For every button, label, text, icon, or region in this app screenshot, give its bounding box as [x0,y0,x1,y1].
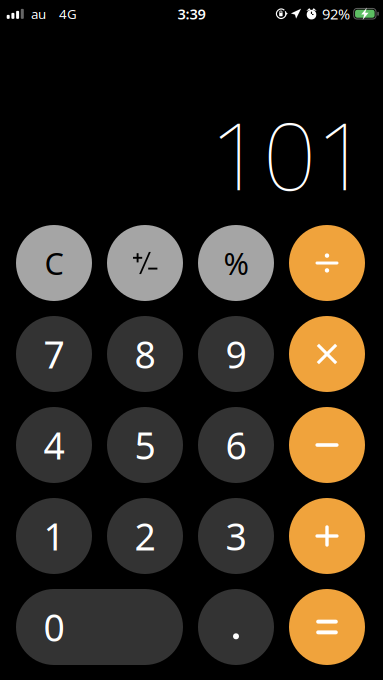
button[interactable]: % [198,225,274,301]
button[interactable]: equals [289,589,365,665]
button[interactable]: 3 [198,498,274,574]
button[interactable]: plus minus [107,225,183,301]
button[interactable]: 2 [107,498,183,574]
button[interactable]: 7 [16,316,92,392]
staticText: 3 [225,511,246,561]
staticText: 101 [210,92,369,216]
staticText: 0 [43,602,64,652]
button[interactable]: 6 [198,407,274,483]
staticText: 7 [43,329,64,379]
staticText: 2 [134,511,155,561]
button[interactable]: 5 [107,407,183,483]
button[interactable]: multiply [289,316,365,392]
staticText: 9 [225,329,246,379]
staticText: 3:39 [177,4,205,23]
button[interactable]: 4 [16,407,92,483]
staticText: % [223,243,248,283]
staticText: 4 [43,420,64,470]
staticText: 8 [134,329,155,379]
staticText: 92% [322,4,350,23]
staticText: 1 [43,511,64,561]
button[interactable]: minus [289,407,365,483]
staticText: 4G [59,5,77,23]
staticText: 5 [134,420,155,470]
button[interactable]: C [16,225,92,301]
button[interactable]: decimal point [198,589,274,665]
staticText: au [31,5,46,23]
button[interactable]: 0 [16,589,183,665]
button[interactable]: plus [289,498,365,574]
button[interactable]: 1 [16,498,92,574]
button[interactable]: divide [289,225,365,301]
button[interactable]: 9 [198,316,274,392]
button[interactable]: 8 [107,316,183,392]
staticText: C [44,243,63,283]
staticText: 6 [225,420,246,470]
